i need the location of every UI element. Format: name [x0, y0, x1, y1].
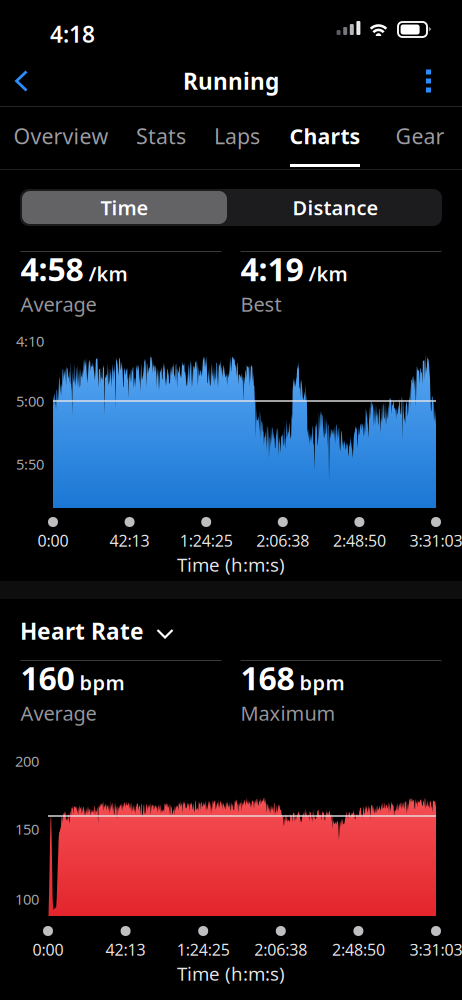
staticText: 3:31:03	[409, 939, 462, 960]
staticText: 150	[15, 819, 39, 839]
staticText: 5:50	[16, 454, 44, 474]
staticText: 200	[15, 751, 39, 771]
button[interactable]: Stats	[111, 108, 211, 170]
staticText: /km	[308, 260, 347, 287]
button[interactable]: Gear	[370, 108, 462, 170]
staticText: Time (h:m:s)	[177, 961, 285, 986]
staticText: Maximum	[240, 700, 335, 726]
staticText: 1:24:25	[180, 530, 233, 551]
staticText: 3:31:03	[409, 530, 462, 551]
staticText: Charts	[289, 122, 360, 150]
staticText: bpm	[299, 669, 344, 696]
staticText: Running	[183, 66, 279, 96]
button[interactable]: Laps	[187, 108, 287, 170]
staticText: 0:00	[37, 530, 68, 551]
staticText: 4:58	[20, 247, 83, 290]
staticText: 0:00	[32, 939, 63, 960]
staticText: 2:06:38	[254, 939, 307, 960]
staticText: Overview	[13, 122, 108, 150]
staticText: 42:13	[106, 939, 146, 960]
staticText: 160	[20, 656, 74, 699]
staticText: 100	[15, 889, 39, 909]
button[interactable]: Overview	[11, 108, 111, 170]
button[interactable]: Heart Rate	[20, 616, 174, 646]
staticText: Heart Rate	[20, 616, 144, 646]
staticText: 2:48:50	[332, 939, 385, 960]
staticText: 5:00	[16, 391, 44, 411]
staticText: Stats	[136, 122, 186, 150]
staticText: Gear	[395, 122, 444, 150]
staticText: Time (h:m:s)	[177, 552, 285, 577]
staticText: 4:19	[240, 247, 303, 290]
staticText: 2:06:38	[256, 530, 309, 551]
staticText: Time	[100, 194, 148, 221]
staticText: 4:10	[16, 331, 44, 351]
button[interactable]: Distance	[229, 189, 442, 226]
button[interactable]: More options	[402, 55, 462, 106]
button[interactable]: Time	[20, 189, 229, 226]
staticText: Average	[20, 291, 96, 317]
staticText: /km	[88, 260, 127, 287]
staticText: Best	[240, 291, 281, 317]
staticText: 168	[240, 656, 294, 699]
staticText: 1:24:25	[177, 939, 230, 960]
staticText: 2:48:50	[333, 530, 386, 551]
staticText: Laps	[214, 122, 260, 150]
button[interactable]: Back	[0, 56, 46, 106]
staticText: Average	[20, 700, 96, 726]
staticText: bpm	[79, 669, 124, 696]
staticText: Distance	[292, 194, 378, 221]
staticText: 42:13	[110, 530, 150, 551]
staticText: 4:18	[50, 19, 95, 49]
button[interactable]: Charts	[275, 108, 375, 170]
